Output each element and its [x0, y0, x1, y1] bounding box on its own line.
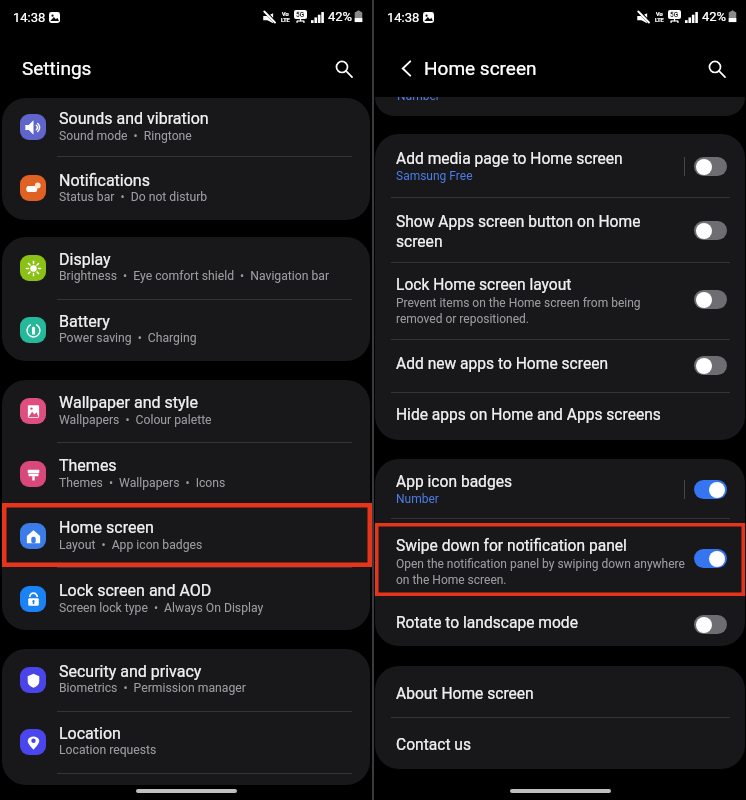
staticText: 42%: [702, 9, 727, 24]
staticText: Themes: [59, 456, 117, 475]
staticText: Lock Home screen layout: [396, 276, 572, 294]
staticText: Samsung Free: [396, 169, 473, 183]
staticText: 42%: [328, 9, 353, 24]
staticText: Screen lock type • Always On Display: [59, 601, 264, 615]
button[interactable]: Battery: [2, 299, 370, 361]
staticText: Location requests: [59, 743, 157, 757]
button[interactable]: Home screen: [2, 505, 370, 568]
button[interactable]: Display: [2, 237, 370, 299]
button[interactable]: App icon badges: [375, 459, 745, 518]
staticText: App icon badges: [396, 473, 512, 491]
staticText: Swipe down for notification panel: [396, 537, 627, 555]
button[interactable]: Location: [2, 711, 370, 773]
button[interactable]: Show Apps screen button on Home screen: [375, 197, 745, 262]
staticText: Settings: [22, 57, 92, 79]
staticText: Add media page to Home screen: [396, 150, 623, 168]
button[interactable]: Sounds and vibration: [2, 98, 370, 157]
staticText: Number: [397, 97, 440, 103]
button[interactable]: Hide apps on Home and Apps screens: [375, 393, 745, 440]
button[interactable]: Search: [328, 53, 358, 83]
staticText: Vo: [282, 11, 289, 17]
staticText: Wallpapers • Colour palette: [59, 413, 212, 427]
staticText: Rotate to landscape mode: [396, 614, 578, 632]
button[interactable]: Contact us: [375, 717, 745, 769]
button[interactable]: About Home screen: [375, 666, 745, 717]
staticText: Themes • Wallpapers • Icons: [59, 476, 226, 490]
staticText: Prevent items on the Home screen from be…: [396, 296, 641, 326]
button[interactable]: Wallpaper and style: [2, 380, 370, 443]
staticText: Lock screen and AOD: [59, 581, 212, 600]
button[interactable]: Off: [694, 615, 727, 634]
staticText: Show Apps screen button on Home screen: [396, 213, 641, 251]
button[interactable]: On: [694, 480, 727, 499]
staticText: Layout • App icon badges: [59, 538, 203, 552]
staticText: Power saving • Charging: [59, 331, 197, 345]
staticText: Sound mode • Ringtone: [59, 129, 192, 143]
staticText: 14:38: [13, 10, 46, 25]
staticText: Hide apps on Home and Apps screens: [396, 406, 661, 424]
button[interactable]: Security and privacy: [2, 649, 370, 711]
button[interactable]: Off: [694, 157, 727, 176]
button[interactable]: Off: [694, 356, 727, 375]
staticText: Location: [59, 724, 121, 743]
button[interactable]: Add new apps to Home screen: [375, 340, 745, 393]
staticText: Wallpaper and style: [59, 393, 198, 412]
staticText: Battery: [59, 312, 110, 331]
button[interactable]: Lock Home screen layout: [375, 262, 745, 340]
staticText: Home screen: [424, 57, 537, 79]
button[interactable]: Lock screen and AOD: [2, 568, 370, 630]
staticText: About Home screen: [396, 685, 534, 703]
staticText: 5G: [296, 11, 305, 19]
staticText: 5G: [670, 11, 679, 19]
button[interactable]: Rotate to landscape mode: [375, 593, 745, 646]
button[interactable]: Off: [694, 221, 727, 240]
button[interactable]: Back: [391, 53, 421, 83]
button[interactable]: Off: [694, 290, 727, 309]
staticText: Notifications: [59, 171, 150, 190]
staticText: Security and privacy: [59, 662, 202, 681]
staticText: Add new apps to Home screen: [396, 355, 609, 373]
button[interactable]: On: [694, 549, 727, 568]
staticText: Number: [396, 492, 439, 506]
button[interactable]: Search: [701, 53, 731, 83]
staticText: Biometrics • Permission manager: [59, 681, 246, 695]
button[interactable]: Themes: [2, 443, 370, 506]
staticText: Brightness • Eye comfort shield • Naviga…: [59, 269, 330, 283]
staticText: LTE: [281, 17, 290, 23]
button[interactable]: Swipe down for notification panel: [375, 518, 745, 593]
staticText: Open the notification panel by swiping d…: [396, 557, 685, 587]
button[interactable]: Add media page to Home screen: [375, 134, 745, 197]
button[interactable]: Notifications: [2, 157, 370, 220]
staticText: 14:38: [387, 10, 420, 25]
staticText: Contact us: [396, 736, 472, 754]
staticText: Status bar • Do not disturb: [59, 190, 208, 204]
staticText: Sounds and vibration: [59, 109, 209, 128]
staticText: Home screen: [59, 518, 154, 537]
staticText: LTE: [655, 17, 664, 23]
staticText: Vo: [656, 11, 663, 17]
staticText: Display: [59, 250, 111, 269]
